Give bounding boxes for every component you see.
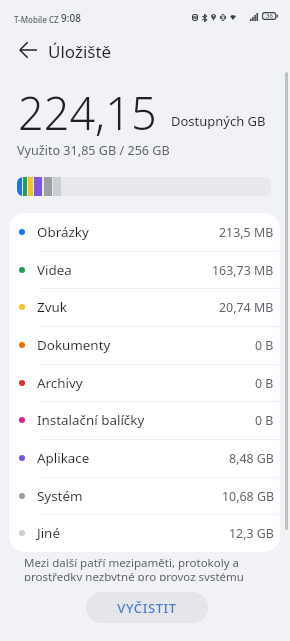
staticText: Jiné xyxy=(37,524,60,542)
staticText: Instalační balíčky xyxy=(37,411,145,429)
staticText: Využito 31,85 GB / 256 GB xyxy=(17,142,170,159)
staticText: Úložiště xyxy=(48,40,112,63)
staticText: Videa xyxy=(37,261,72,279)
button[interactable]: Videa xyxy=(9,251,280,289)
staticText: 0 B xyxy=(255,412,274,429)
button[interactable]: Obrázky xyxy=(9,213,280,251)
staticText: T-Mobile CZ xyxy=(14,14,59,25)
staticText: 163,73 MB xyxy=(212,262,274,279)
staticText: 224,15 xyxy=(18,82,157,143)
staticText: Zvuk xyxy=(37,298,67,316)
staticText: 12,3 GB xyxy=(229,525,274,542)
button[interactable]: Zvuk xyxy=(9,288,280,326)
button[interactable]: VYČISTIT xyxy=(86,592,208,623)
staticText: Systém xyxy=(37,487,83,505)
button[interactable]: Back xyxy=(12,34,44,66)
button[interactable]: Instalační balíčky xyxy=(9,401,280,439)
button[interactable]: Aplikace xyxy=(9,439,280,477)
staticText: Archivy xyxy=(37,374,83,392)
button[interactable]: Archivy xyxy=(9,364,280,402)
staticText: 36 xyxy=(266,12,273,20)
button[interactable]: Systém xyxy=(9,477,280,515)
button[interactable]: Dokumenty xyxy=(9,326,280,364)
staticText: 9:08 xyxy=(61,11,81,25)
staticText: 0 B xyxy=(255,375,274,392)
staticText: VYČISTIT xyxy=(117,599,177,617)
staticText: 0 B xyxy=(255,337,274,354)
staticText: 213,5 MB xyxy=(219,224,274,241)
staticText: 8,48 GB xyxy=(229,450,274,467)
staticText: 20,74 MB xyxy=(219,299,274,316)
staticText: Dostupných GB xyxy=(171,112,266,130)
staticText: Obrázky xyxy=(37,223,89,241)
staticText: Mezi další patří mezipaměti, protokoly a… xyxy=(24,555,246,581)
staticText: Dokumenty xyxy=(37,336,111,354)
staticText: 10,68 GB xyxy=(222,488,274,505)
button[interactable]: Jiné xyxy=(9,514,280,552)
staticText: Aplikace xyxy=(37,449,90,467)
